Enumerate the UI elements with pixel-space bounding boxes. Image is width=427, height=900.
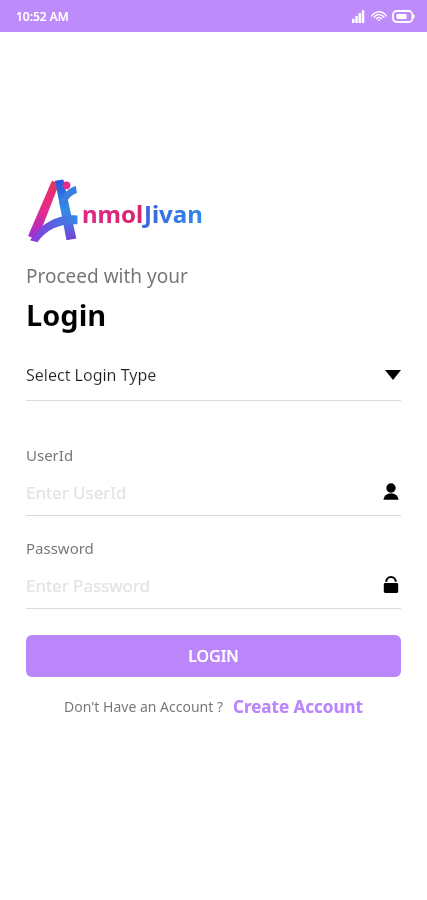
staticText: Password xyxy=(26,538,94,558)
staticText: Create Account xyxy=(233,695,363,718)
other: Password xyxy=(381,575,401,595)
staticText: Select Login Type xyxy=(26,364,385,386)
staticText: Jivan xyxy=(144,197,203,230)
staticText: Proceed with your xyxy=(26,263,188,289)
staticText: Enter UserId xyxy=(26,481,381,504)
staticText: Don't Have an Account ? xyxy=(64,697,223,716)
other: Expand login type xyxy=(385,370,401,380)
button[interactable]: LOGIN xyxy=(26,635,401,677)
staticText: nmol xyxy=(82,197,144,230)
staticText: LOGIN xyxy=(188,645,239,667)
staticText: Enter Password xyxy=(26,574,381,597)
staticText: UserId xyxy=(26,445,74,465)
button[interactable]: Create Account xyxy=(233,695,363,718)
button[interactable]: Password xyxy=(26,538,401,609)
staticText: 10:52 AM xyxy=(16,8,69,24)
staticText: Login xyxy=(26,295,107,334)
other: User xyxy=(381,482,401,502)
button[interactable]: Select Login Type xyxy=(26,358,401,401)
button[interactable]: UserId xyxy=(26,445,401,516)
